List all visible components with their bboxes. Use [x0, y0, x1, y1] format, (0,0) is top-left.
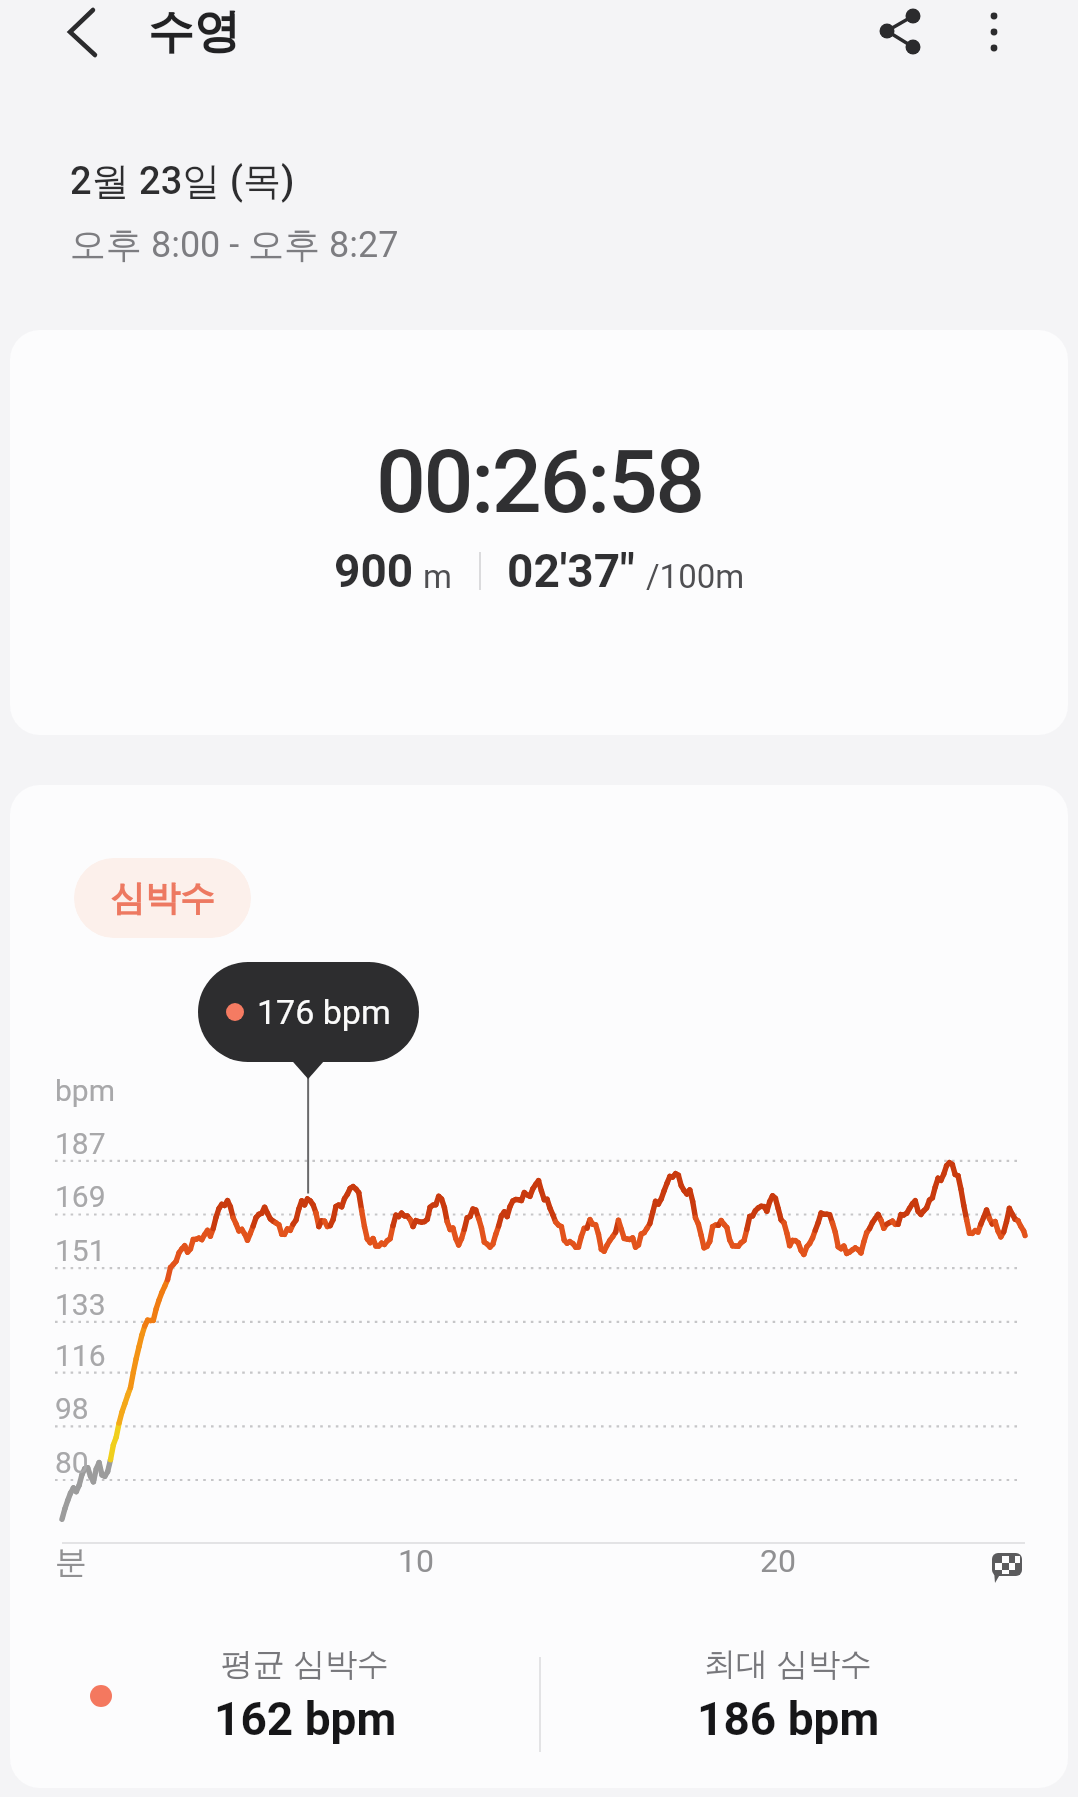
staticText: 분 [55, 1542, 87, 1582]
button[interactable]: 00:26:58 [10, 330, 1068, 735]
staticText: 수영 [148, 3, 240, 61]
staticText: 20 [760, 1542, 796, 1580]
staticText: m [423, 557, 452, 596]
staticText: 80 [55, 1445, 89, 1480]
staticText: 02'37" [507, 544, 635, 598]
staticText: 133 [55, 1287, 106, 1322]
staticText: 심박수 [110, 876, 215, 920]
staticText: 169 [55, 1179, 106, 1214]
button[interactable] [966, 0, 1022, 64]
staticText: bpm [55, 1073, 115, 1108]
staticText: 162 bpm [214, 1692, 397, 1746]
staticText: 최대 심박수 [704, 1644, 872, 1684]
staticText: 2월 23일 (목) [70, 157, 295, 205]
staticText: 900 [334, 544, 414, 598]
staticText: 186 bpm [697, 1692, 880, 1746]
staticText: /100m [646, 557, 745, 596]
staticText: 오후 8:00 - 오후 8:27 [70, 222, 399, 267]
button[interactable] [866, 0, 930, 64]
staticText: 187 [55, 1126, 106, 1161]
button[interactable]: 심박수 [74, 858, 251, 938]
staticText: 176 bpm [257, 992, 391, 1032]
staticText: 116 [55, 1338, 106, 1373]
staticText: 00:26:58 [376, 430, 703, 533]
staticText: 평균 심박수 [221, 1644, 389, 1684]
staticText: 10 [398, 1542, 434, 1580]
staticText: 98 [55, 1391, 89, 1426]
button[interactable] [50, 4, 110, 64]
staticText: 151 [55, 1233, 106, 1268]
